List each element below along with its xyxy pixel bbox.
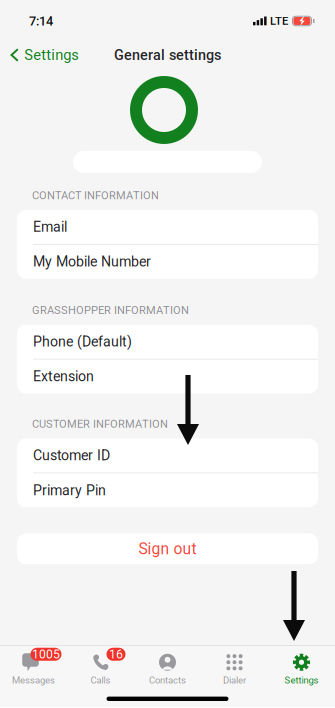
- button[interactable]: Primary Pin: [17, 473, 318, 507]
- staticText: Contacts: [149, 675, 186, 686]
- button[interactable]: Contacts: [134, 645, 201, 688]
- staticText: General settings: [114, 47, 221, 63]
- button[interactable]: Dialer: [201, 645, 268, 688]
- staticText: Settings: [24, 46, 79, 64]
- staticText: 16: [109, 647, 123, 661]
- staticText: Messages: [12, 675, 55, 686]
- staticText: Phone (Default): [33, 333, 132, 350]
- button[interactable]: Phone (Default): [17, 325, 318, 359]
- button[interactable]: 1005: [0, 645, 67, 688]
- staticText: Email: [33, 219, 67, 235]
- button[interactable]: Settings: [268, 645, 335, 688]
- staticText: My Mobile Number: [33, 253, 151, 270]
- staticText: Extension: [33, 368, 94, 385]
- staticText: 1005: [32, 647, 60, 661]
- staticText: 7:14: [29, 13, 53, 28]
- staticText: CUSTOMER INFORMATION: [32, 417, 168, 430]
- staticText: Primary Pin: [33, 482, 106, 499]
- staticText: Sign out: [138, 540, 196, 558]
- staticText: Calls: [90, 675, 110, 686]
- button[interactable]: Extension: [17, 359, 318, 393]
- staticText: Settings: [284, 675, 318, 686]
- staticText: CONTACT INFORMATION: [32, 189, 159, 202]
- staticText: LTE: [270, 14, 288, 27]
- button[interactable]: 16: [67, 645, 134, 688]
- staticText: Dialer: [223, 675, 246, 686]
- staticText: GRASSHOPPER INFORMATION: [32, 304, 189, 317]
- staticText: Customer ID: [33, 447, 110, 464]
- button[interactable]: Settings: [0, 41, 79, 69]
- button[interactable]: Email: [17, 210, 318, 244]
- button[interactable]: Customer ID: [17, 438, 318, 472]
- button[interactable]: My Mobile Number: [17, 245, 318, 279]
- button[interactable]: Sign out: [0, 507, 335, 564]
